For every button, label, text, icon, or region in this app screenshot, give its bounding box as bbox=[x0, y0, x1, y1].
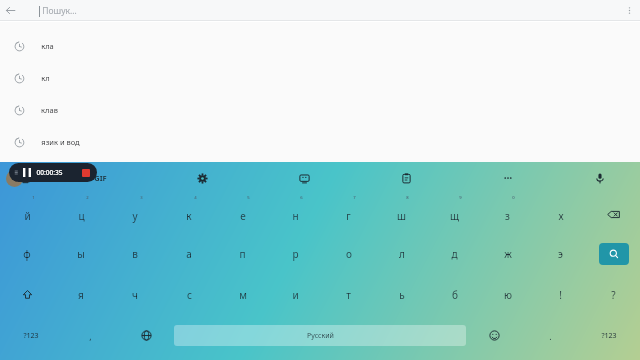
staticText: Русский bbox=[307, 331, 334, 341]
button[interactable]: т bbox=[322, 274, 375, 315]
staticText: ы bbox=[77, 247, 85, 261]
button[interactable]: 0 bbox=[481, 194, 534, 234]
button[interactable]: ь bbox=[375, 274, 428, 315]
button[interactable]: 1 bbox=[0, 194, 54, 234]
button[interactable]: Back bbox=[0, 0, 21, 21]
staticText: ш bbox=[397, 209, 406, 223]
staticText: э bbox=[558, 247, 563, 261]
button[interactable]: 6 bbox=[269, 194, 322, 234]
staticText: 5 bbox=[247, 195, 250, 201]
button[interactable]: 2 bbox=[54, 194, 108, 234]
staticText: язик и вод bbox=[41, 137, 80, 147]
button[interactable]: д bbox=[428, 234, 481, 274]
staticText: ф bbox=[23, 247, 31, 261]
button[interactable]: я bbox=[54, 274, 108, 315]
staticText: 3 bbox=[140, 195, 143, 201]
staticText: о bbox=[346, 247, 352, 261]
staticText: 8 bbox=[406, 195, 409, 201]
staticText: в bbox=[132, 247, 138, 261]
staticText: . bbox=[549, 330, 552, 342]
staticText: 7 bbox=[353, 195, 356, 201]
button[interactable]: Recorder handle bbox=[6, 170, 23, 187]
button[interactable]: клав bbox=[0, 94, 640, 126]
button[interactable]: б bbox=[428, 274, 481, 315]
staticText: ?123 bbox=[601, 331, 617, 341]
button[interactable]: ?123 bbox=[0, 315, 62, 356]
button[interactable]: м bbox=[216, 274, 269, 315]
button[interactable]: ч bbox=[108, 274, 162, 315]
button[interactable]: ф bbox=[0, 234, 54, 274]
button[interactable]: х bbox=[534, 194, 587, 234]
button[interactable]: ы bbox=[54, 234, 108, 274]
staticText: с bbox=[187, 288, 192, 302]
button[interactable]: Shift bbox=[0, 274, 54, 315]
button[interactable]: и bbox=[269, 274, 322, 315]
button[interactable]: Change language bbox=[118, 315, 174, 356]
staticText: з bbox=[505, 209, 510, 223]
button[interactable]: п bbox=[216, 234, 269, 274]
staticText: м bbox=[239, 288, 247, 302]
staticText: GIF bbox=[94, 173, 107, 183]
button[interactable]: 3 bbox=[108, 194, 162, 234]
button[interactable]: Emoji bbox=[466, 315, 522, 356]
button[interactable]: 4 bbox=[162, 194, 216, 234]
button[interactable]: язик и вод bbox=[0, 126, 640, 158]
staticText: кл bbox=[41, 73, 50, 83]
staticText: кла bbox=[41, 41, 54, 51]
staticText: а bbox=[186, 247, 192, 261]
button[interactable]: кл bbox=[0, 62, 640, 94]
button[interactable]: 8 bbox=[375, 194, 428, 234]
button[interactable]: Translate bbox=[0, 162, 50, 194]
staticText: й bbox=[24, 209, 31, 223]
staticText: ч bbox=[132, 288, 138, 302]
button[interactable]: Recorder menu bbox=[12, 163, 20, 182]
staticText: ?123 bbox=[23, 331, 39, 341]
staticText: ? bbox=[611, 288, 616, 302]
button[interactable]: э bbox=[534, 234, 587, 274]
button[interactable]: с bbox=[162, 274, 216, 315]
button[interactable]: Search bbox=[587, 234, 640, 274]
button[interactable]: Backspace bbox=[587, 194, 640, 234]
button[interactable]: . bbox=[522, 315, 578, 356]
staticText: 00:00:35 bbox=[36, 168, 63, 177]
button[interactable]: о bbox=[322, 234, 375, 274]
staticText: 6 bbox=[300, 195, 303, 201]
button[interactable]: More options bbox=[619, 0, 640, 21]
staticText: ь bbox=[399, 288, 405, 302]
button[interactable]: Stickers bbox=[253, 162, 355, 194]
button[interactable]: в bbox=[108, 234, 162, 274]
button[interactable]: ж bbox=[481, 234, 534, 274]
staticText: 2 bbox=[86, 195, 89, 201]
button[interactable]: 7 bbox=[322, 194, 375, 234]
staticText: 4 bbox=[194, 195, 197, 201]
button[interactable]: More bbox=[457, 162, 559, 194]
button[interactable]: Pause recording bbox=[20, 163, 34, 182]
button[interactable]: р bbox=[269, 234, 322, 274]
button[interactable]: , bbox=[62, 315, 118, 356]
staticText: ! bbox=[559, 288, 562, 302]
button[interactable]: 9 bbox=[428, 194, 481, 234]
button[interactable]: GIF bbox=[50, 162, 151, 194]
button[interactable]: Clipboard bbox=[355, 162, 457, 194]
button[interactable]: Stop recording bbox=[78, 163, 94, 182]
button[interactable]: Voice input bbox=[559, 162, 640, 194]
staticText: щ bbox=[450, 209, 459, 223]
button[interactable]: ?123 bbox=[578, 315, 640, 356]
staticText: я bbox=[78, 288, 84, 302]
staticText: р bbox=[292, 247, 299, 261]
staticText: п bbox=[239, 247, 246, 261]
button[interactable]: ! bbox=[534, 274, 587, 315]
staticText: н bbox=[292, 209, 299, 223]
button[interactable]: кла bbox=[0, 30, 640, 62]
button[interactable]: л bbox=[375, 234, 428, 274]
button[interactable]: Settings bbox=[151, 162, 253, 194]
staticText: е bbox=[240, 209, 246, 223]
button[interactable]: Русский bbox=[174, 315, 466, 356]
button[interactable]: ю bbox=[481, 274, 534, 315]
button[interactable]: ? bbox=[587, 274, 640, 315]
button[interactable]: а bbox=[162, 234, 216, 274]
staticText: 9 bbox=[459, 195, 462, 201]
button[interactable]: 5 bbox=[216, 194, 269, 234]
staticText: т bbox=[346, 288, 351, 302]
staticText: ю bbox=[504, 288, 512, 302]
